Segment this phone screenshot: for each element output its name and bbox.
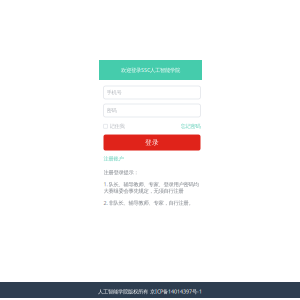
staticText: 手机号 [106, 89, 121, 96]
staticText: 2. 非队长、辅导教师、专家，自行注册。 [103, 199, 193, 206]
staticText: 欢迎登录SSC人工智能学院 [121, 66, 180, 74]
staticText: 注册账户 [103, 156, 123, 162]
staticText: 记住我 [109, 123, 124, 130]
staticText: 忘记密码 [180, 123, 200, 130]
staticText: 1. 队长、辅导教师、专家、登录用户密码均大赛组委会事先规定，无须自行注册 [103, 181, 198, 194]
button[interactable]: 忘记密码 [180, 123, 200, 130]
button[interactable]: 密码 [103, 104, 200, 117]
staticText: 注册登录提示： [103, 169, 138, 176]
staticText: 登录 [145, 138, 159, 147]
staticText: 密码 [106, 107, 116, 114]
button[interactable]: 注册账户 [103, 156, 200, 162]
button[interactable]: 登录 [103, 135, 200, 151]
button[interactable]: 手机号 [103, 86, 200, 99]
button[interactable]: 记住我 [103, 123, 124, 130]
staticText: 人工智能学院版权所有 京ICP备14014397号-1 [98, 288, 202, 295]
